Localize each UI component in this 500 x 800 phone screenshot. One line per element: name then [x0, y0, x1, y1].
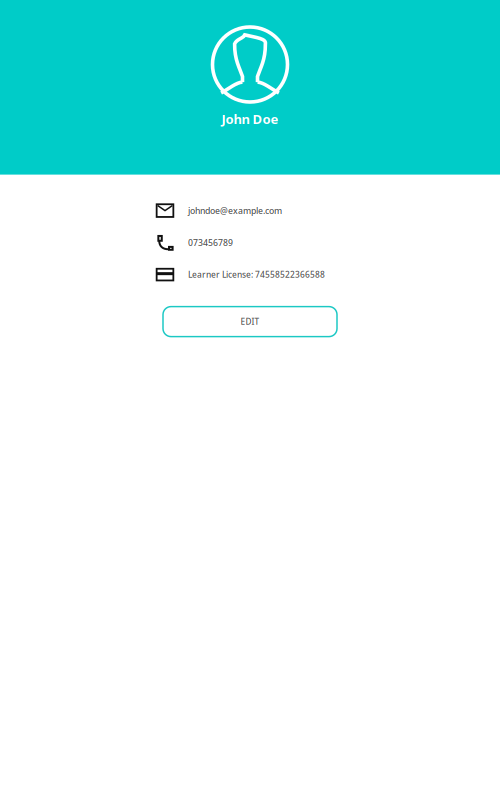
staticText: EDIT: [240, 316, 259, 327]
staticText: johndoe@example.com: [188, 205, 282, 216]
staticText: 073456789: [188, 237, 233, 248]
button[interactable]: EDIT: [163, 307, 337, 337]
staticText: Learner License: 74558522366588: [188, 269, 325, 280]
staticText: John Doe: [221, 110, 278, 128]
